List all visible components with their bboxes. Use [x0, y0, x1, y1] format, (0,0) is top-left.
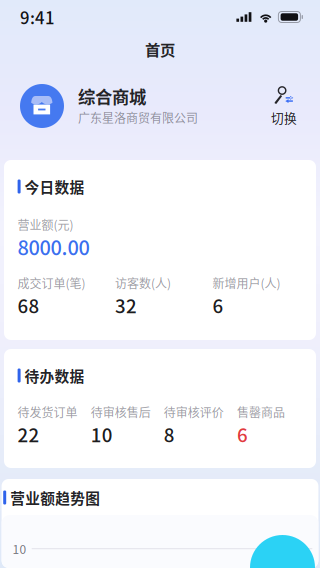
staticText: 6: [237, 420, 248, 447]
button[interactable]: 切换: [263, 85, 305, 127]
staticText: 8: [164, 420, 175, 447]
staticText: 待审核评价: [164, 403, 224, 421]
staticText: 售罄商品: [237, 403, 285, 421]
staticText: 广东星洛商贸有限公司: [78, 109, 198, 126]
staticText: 10: [13, 540, 27, 557]
staticText: 68: [18, 291, 40, 318]
staticText: 营业额趋势图: [10, 487, 100, 508]
staticText: 待发货订单: [18, 403, 78, 421]
staticText: 9:41: [20, 5, 55, 29]
staticText: 新增用户(人): [212, 274, 280, 292]
staticText: 32: [115, 291, 137, 318]
button[interactable]: 动态: [250, 535, 315, 568]
staticText: 今日数据: [25, 176, 85, 197]
staticText: 待办数据: [25, 365, 85, 386]
staticText: 营业额(元): [18, 216, 74, 233]
staticText: 10: [91, 420, 113, 447]
staticText: 待审核售后: [91, 403, 151, 421]
staticText: 首页: [145, 38, 175, 60]
staticText: 6: [212, 291, 223, 318]
staticText: 切换: [271, 108, 297, 127]
staticText: 8000.00: [18, 232, 90, 261]
staticText: 成交订单(笔): [18, 274, 86, 292]
staticText: 访客数(人): [115, 274, 171, 292]
staticText: 综合商城: [78, 83, 146, 109]
staticText: 22: [18, 420, 40, 447]
